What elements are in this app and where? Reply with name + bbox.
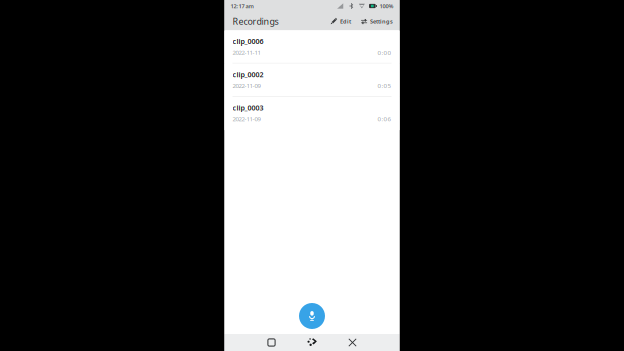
staticText: 0:00 xyxy=(377,48,391,57)
staticText: 2022-11-09 xyxy=(232,115,260,123)
staticText: clip_0002 xyxy=(232,70,263,79)
staticText: 100% xyxy=(379,2,393,10)
staticText: clip_0003 xyxy=(232,103,263,112)
button[interactable]: Settings xyxy=(361,17,393,25)
button[interactable]: clip_0002 xyxy=(224,64,399,97)
staticText: Settings xyxy=(370,17,393,25)
button[interactable]: Record xyxy=(299,303,325,329)
staticText: 0:05 xyxy=(377,81,391,90)
button[interactable]: Close xyxy=(332,334,373,351)
staticText: 2022-11-11 xyxy=(232,48,260,57)
button[interactable]: Recent apps xyxy=(251,334,292,351)
button[interactable]: Home xyxy=(292,334,332,351)
button[interactable]: clip_0003 xyxy=(224,97,399,130)
staticText: 2022-11-09 xyxy=(232,82,260,90)
staticText: 0:06 xyxy=(377,115,391,123)
staticText: clip_0006 xyxy=(232,36,263,46)
button[interactable]: Edit xyxy=(331,17,351,25)
staticText: Edit xyxy=(340,17,351,25)
button[interactable]: clip_0006 xyxy=(224,30,399,64)
staticText: 12:17 am xyxy=(230,2,253,10)
staticText: Recordings xyxy=(232,15,278,27)
